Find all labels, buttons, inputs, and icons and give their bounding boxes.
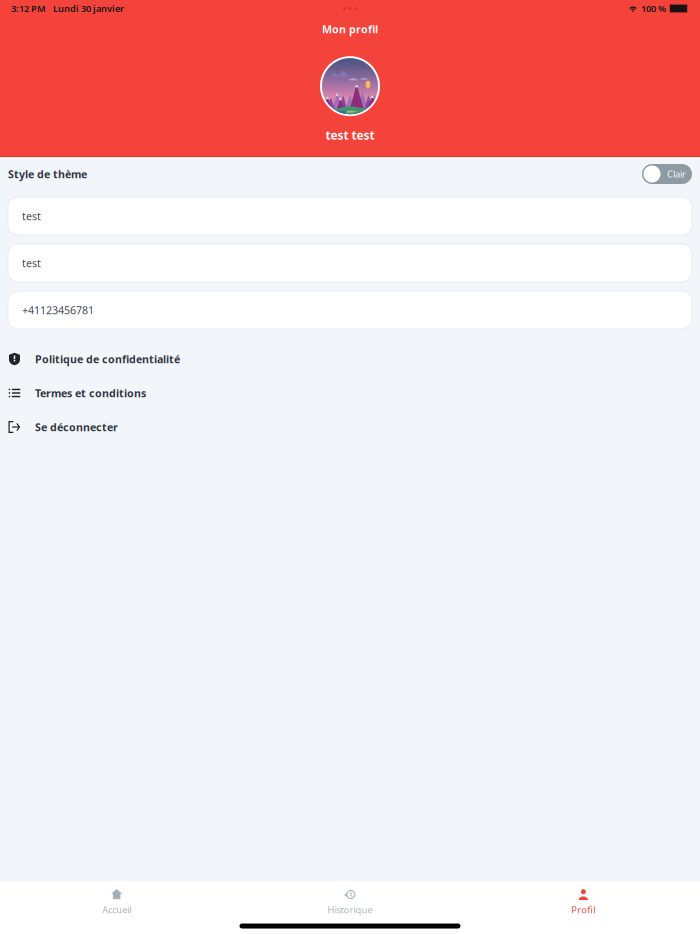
staticText: Accueil [102,904,131,916]
staticText: Lundi 30 janvier [53,2,124,15]
button[interactable]: Accueil [0,881,233,915]
staticText: Profil [571,904,595,916]
button[interactable]: Politique de confidentialité [0,342,700,376]
staticText: 3:12 PM [11,2,46,15]
staticText: Mon profil [322,22,378,36]
button[interactable]: Profil [467,881,700,915]
staticText: Se déconnecter [35,420,118,434]
staticText: 100 % [641,2,666,15]
button[interactable]: Historique [233,881,467,915]
staticText: +41123456781 [22,303,94,317]
button[interactable]: Clair [642,164,692,184]
staticText: test [22,256,41,270]
button[interactable]: Se déconnecter [0,410,700,444]
staticText: Style de thème [8,167,87,181]
staticText: Clair [667,168,686,180]
staticText: Termes et conditions [35,386,146,400]
button[interactable]: Termes et conditions [0,376,700,410]
staticText: Politique de confidentialité [35,352,180,366]
staticText: Historique [327,904,372,916]
staticText: test [22,209,41,223]
staticText: test test [325,127,374,143]
